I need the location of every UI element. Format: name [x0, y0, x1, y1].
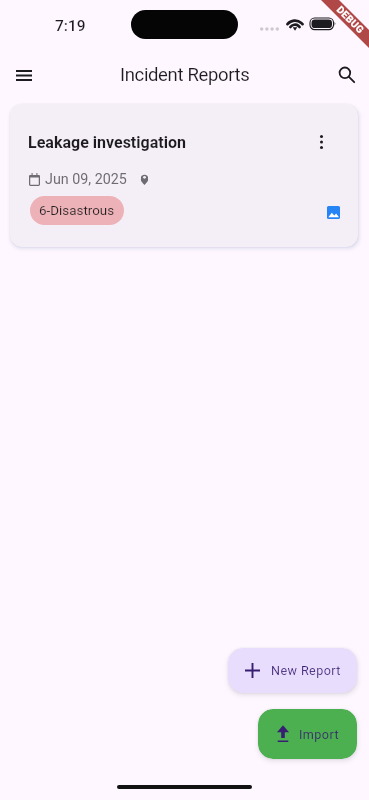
button[interactable]: More options — [306, 127, 336, 157]
staticText: Jun 09, 2025 — [45, 171, 127, 188]
button[interactable]: Leakage investigation — [10, 104, 358, 247]
staticText: DEBUG — [334, 4, 366, 36]
staticText: New Report — [271, 663, 341, 678]
staticText: Incident Reports — [120, 64, 250, 86]
button[interactable]: 6-Disastrous — [30, 196, 124, 225]
button[interactable]: Open navigation menu — [2, 53, 46, 97]
staticText: 6-Disastrous — [39, 203, 115, 219]
button[interactable]: Search — [326, 54, 368, 96]
button[interactable]: New Report — [228, 648, 357, 693]
staticText: 7:19 — [55, 17, 86, 35]
staticText: Leakage investigation — [28, 133, 186, 152]
button[interactable]: View attached image — [327, 206, 340, 219]
staticText: Import — [299, 727, 339, 742]
button[interactable]: Import — [258, 709, 357, 759]
